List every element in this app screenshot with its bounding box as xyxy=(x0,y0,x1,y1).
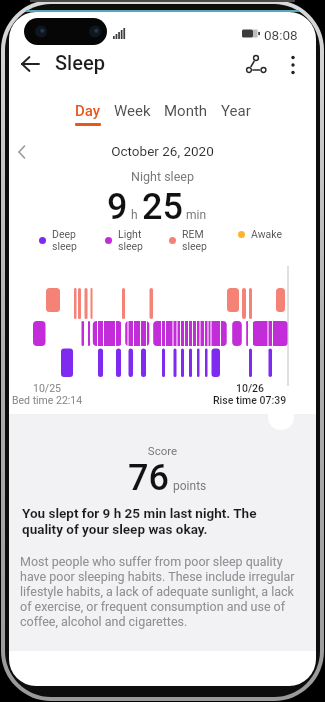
staticText: h xyxy=(131,208,138,222)
button[interactable] xyxy=(281,50,305,80)
staticText: Week xyxy=(114,102,151,120)
staticText: 25 xyxy=(142,186,183,228)
staticText: Sleep xyxy=(55,51,105,74)
staticText: Bed time 22:14 xyxy=(12,394,83,406)
staticText: Deep xyxy=(52,228,76,240)
button[interactable]: Month xyxy=(164,102,208,126)
staticText: 10/25 xyxy=(33,382,61,394)
button[interactable] xyxy=(239,50,271,80)
staticText: sleep xyxy=(52,240,78,252)
staticText: 9 xyxy=(107,186,128,228)
button[interactable]: Year xyxy=(221,102,251,126)
staticText: 10/26 xyxy=(236,382,265,394)
staticText: You slept for 9 h 25 min last night. The… xyxy=(22,505,257,538)
staticText: 08:08 xyxy=(264,27,298,43)
staticText: sleep xyxy=(182,240,208,252)
staticText: Awake xyxy=(251,228,283,240)
staticText: 76 xyxy=(128,457,169,499)
staticText: points xyxy=(173,479,207,493)
button[interactable]: Week xyxy=(114,102,151,126)
staticText: Month xyxy=(164,102,208,120)
staticText: sleep xyxy=(118,240,144,252)
staticText: min xyxy=(186,208,207,222)
button[interactable] xyxy=(11,140,33,164)
staticText: Year xyxy=(221,102,251,120)
staticText: Night sleep xyxy=(9,169,316,184)
button[interactable] xyxy=(268,404,294,430)
button[interactable]: Day xyxy=(75,102,101,126)
staticText: Light xyxy=(118,228,142,240)
staticText: Score xyxy=(9,444,316,457)
staticText: Day xyxy=(75,102,101,120)
staticText: Rise time 07:39 xyxy=(213,394,287,406)
staticText: Most people who suffer from poor sleep q… xyxy=(20,554,295,629)
staticText: REM xyxy=(182,228,204,240)
button[interactable] xyxy=(17,52,45,76)
staticText: October 26, 2020 xyxy=(9,143,316,159)
